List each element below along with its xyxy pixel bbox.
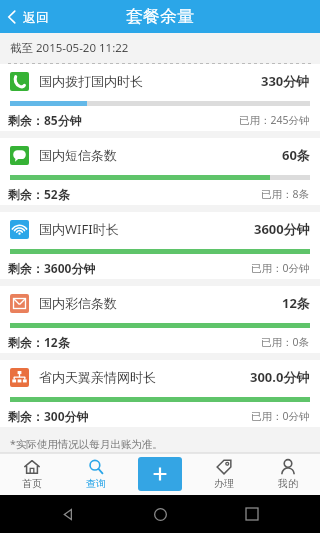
- button[interactable]: 新增: [138, 457, 182, 491]
- staticText: 剩余：12条: [8, 334, 70, 350]
- button[interactable]: 国内拨打国内时长: [0, 64, 320, 138]
- staticText: 300.0分钟: [250, 368, 310, 386]
- staticText: 国内短信条数: [39, 147, 117, 163]
- button[interactable]: 首页: [0, 453, 64, 495]
- button[interactable]: Home: [147, 501, 173, 527]
- staticText: 3600分钟: [254, 220, 310, 238]
- staticText: 已用：245分钟: [239, 113, 310, 127]
- button[interactable]: 国内WIFI时长: [0, 212, 320, 286]
- staticText: 剩余：85分钟: [8, 112, 82, 128]
- button[interactable]: 返回: [0, 0, 59, 33]
- staticText: 已用：0条: [261, 335, 310, 349]
- button[interactable]: 省内天翼亲情网时长: [0, 360, 320, 434]
- staticText: 已用：8条: [261, 187, 310, 201]
- staticText: 12条: [282, 294, 310, 312]
- staticText: 国内WIFI时长: [39, 220, 119, 238]
- staticText: 330分钟: [261, 72, 310, 90]
- staticText: 剩余：52条: [8, 186, 70, 202]
- button[interactable]: Back: [55, 501, 81, 527]
- staticText: 剩余：300分钟: [8, 408, 89, 424]
- staticText: 已用：0分钟: [251, 409, 310, 423]
- staticText: 已用：0分钟: [251, 261, 310, 275]
- staticText: 省内天翼亲情网时长: [39, 369, 156, 385]
- staticText: *实际使用情况以每月出账为准。: [10, 437, 163, 451]
- button[interactable]: 国内短信条数: [0, 138, 320, 212]
- staticText: 60条: [282, 146, 310, 164]
- button[interactable]: 查询: [64, 453, 128, 495]
- staticText: 我的: [278, 477, 298, 490]
- staticText: 套餐余量: [126, 6, 194, 27]
- button[interactable]: 办理: [192, 453, 256, 495]
- button[interactable]: 我的: [256, 453, 320, 495]
- staticText: 查询: [86, 477, 106, 490]
- staticText: 办理: [214, 477, 234, 490]
- staticText: 返回: [23, 9, 49, 25]
- staticText: 剩余：3600分钟: [8, 260, 96, 276]
- staticText: 截至 2015-05-20 11:22: [10, 40, 129, 56]
- staticText: 国内彩信条数: [39, 295, 117, 311]
- staticText: 首页: [22, 477, 42, 490]
- button[interactable]: Recents: [239, 501, 265, 527]
- staticText: 国内拨打国内时长: [39, 73, 143, 89]
- button[interactable]: 国内彩信条数: [0, 286, 320, 360]
